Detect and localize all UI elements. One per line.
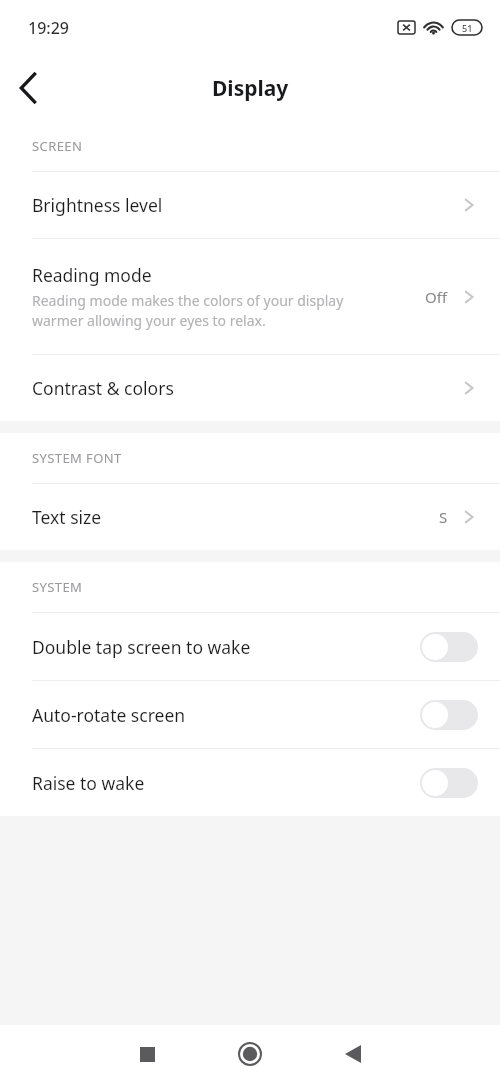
button[interactable]: Text size [0, 484, 500, 550]
button[interactable]: Reading mode [0, 239, 500, 354]
button[interactable]: Contrast & colors [0, 355, 500, 421]
staticText: Off [425, 287, 448, 307]
staticText: Raise to wake [32, 771, 420, 795]
button[interactable]: Raise to wake [0, 749, 500, 816]
staticText: 19:29 [28, 17, 69, 39]
staticText: Text size [32, 505, 102, 529]
staticText: Contrast & colors [32, 376, 174, 400]
staticText: Brightness level [32, 193, 163, 217]
staticText: 51 [462, 22, 473, 34]
staticText: Reading mode makes the colors of your di… [32, 291, 397, 330]
button[interactable]: Home [222, 1026, 278, 1082]
staticText: Double tap screen to wake [32, 635, 420, 659]
button[interactable]: Auto-rotate screen [0, 681, 500, 748]
staticText: Reading mode [32, 263, 152, 287]
staticText: Display [212, 74, 289, 103]
button[interactable]: Brightness level [0, 172, 500, 238]
button[interactable]: Double tap screen to wake [0, 613, 500, 680]
staticText: SCREEN [32, 137, 83, 155]
button[interactable]: Recents [119, 1026, 175, 1082]
button[interactable]: Back [0, 60, 56, 116]
staticText: SYSTEM FONT [32, 449, 122, 467]
staticText: SYSTEM [32, 578, 83, 596]
staticText: S [439, 507, 448, 527]
staticText: Auto-rotate screen [32, 703, 420, 727]
button[interactable]: Back [325, 1026, 381, 1082]
